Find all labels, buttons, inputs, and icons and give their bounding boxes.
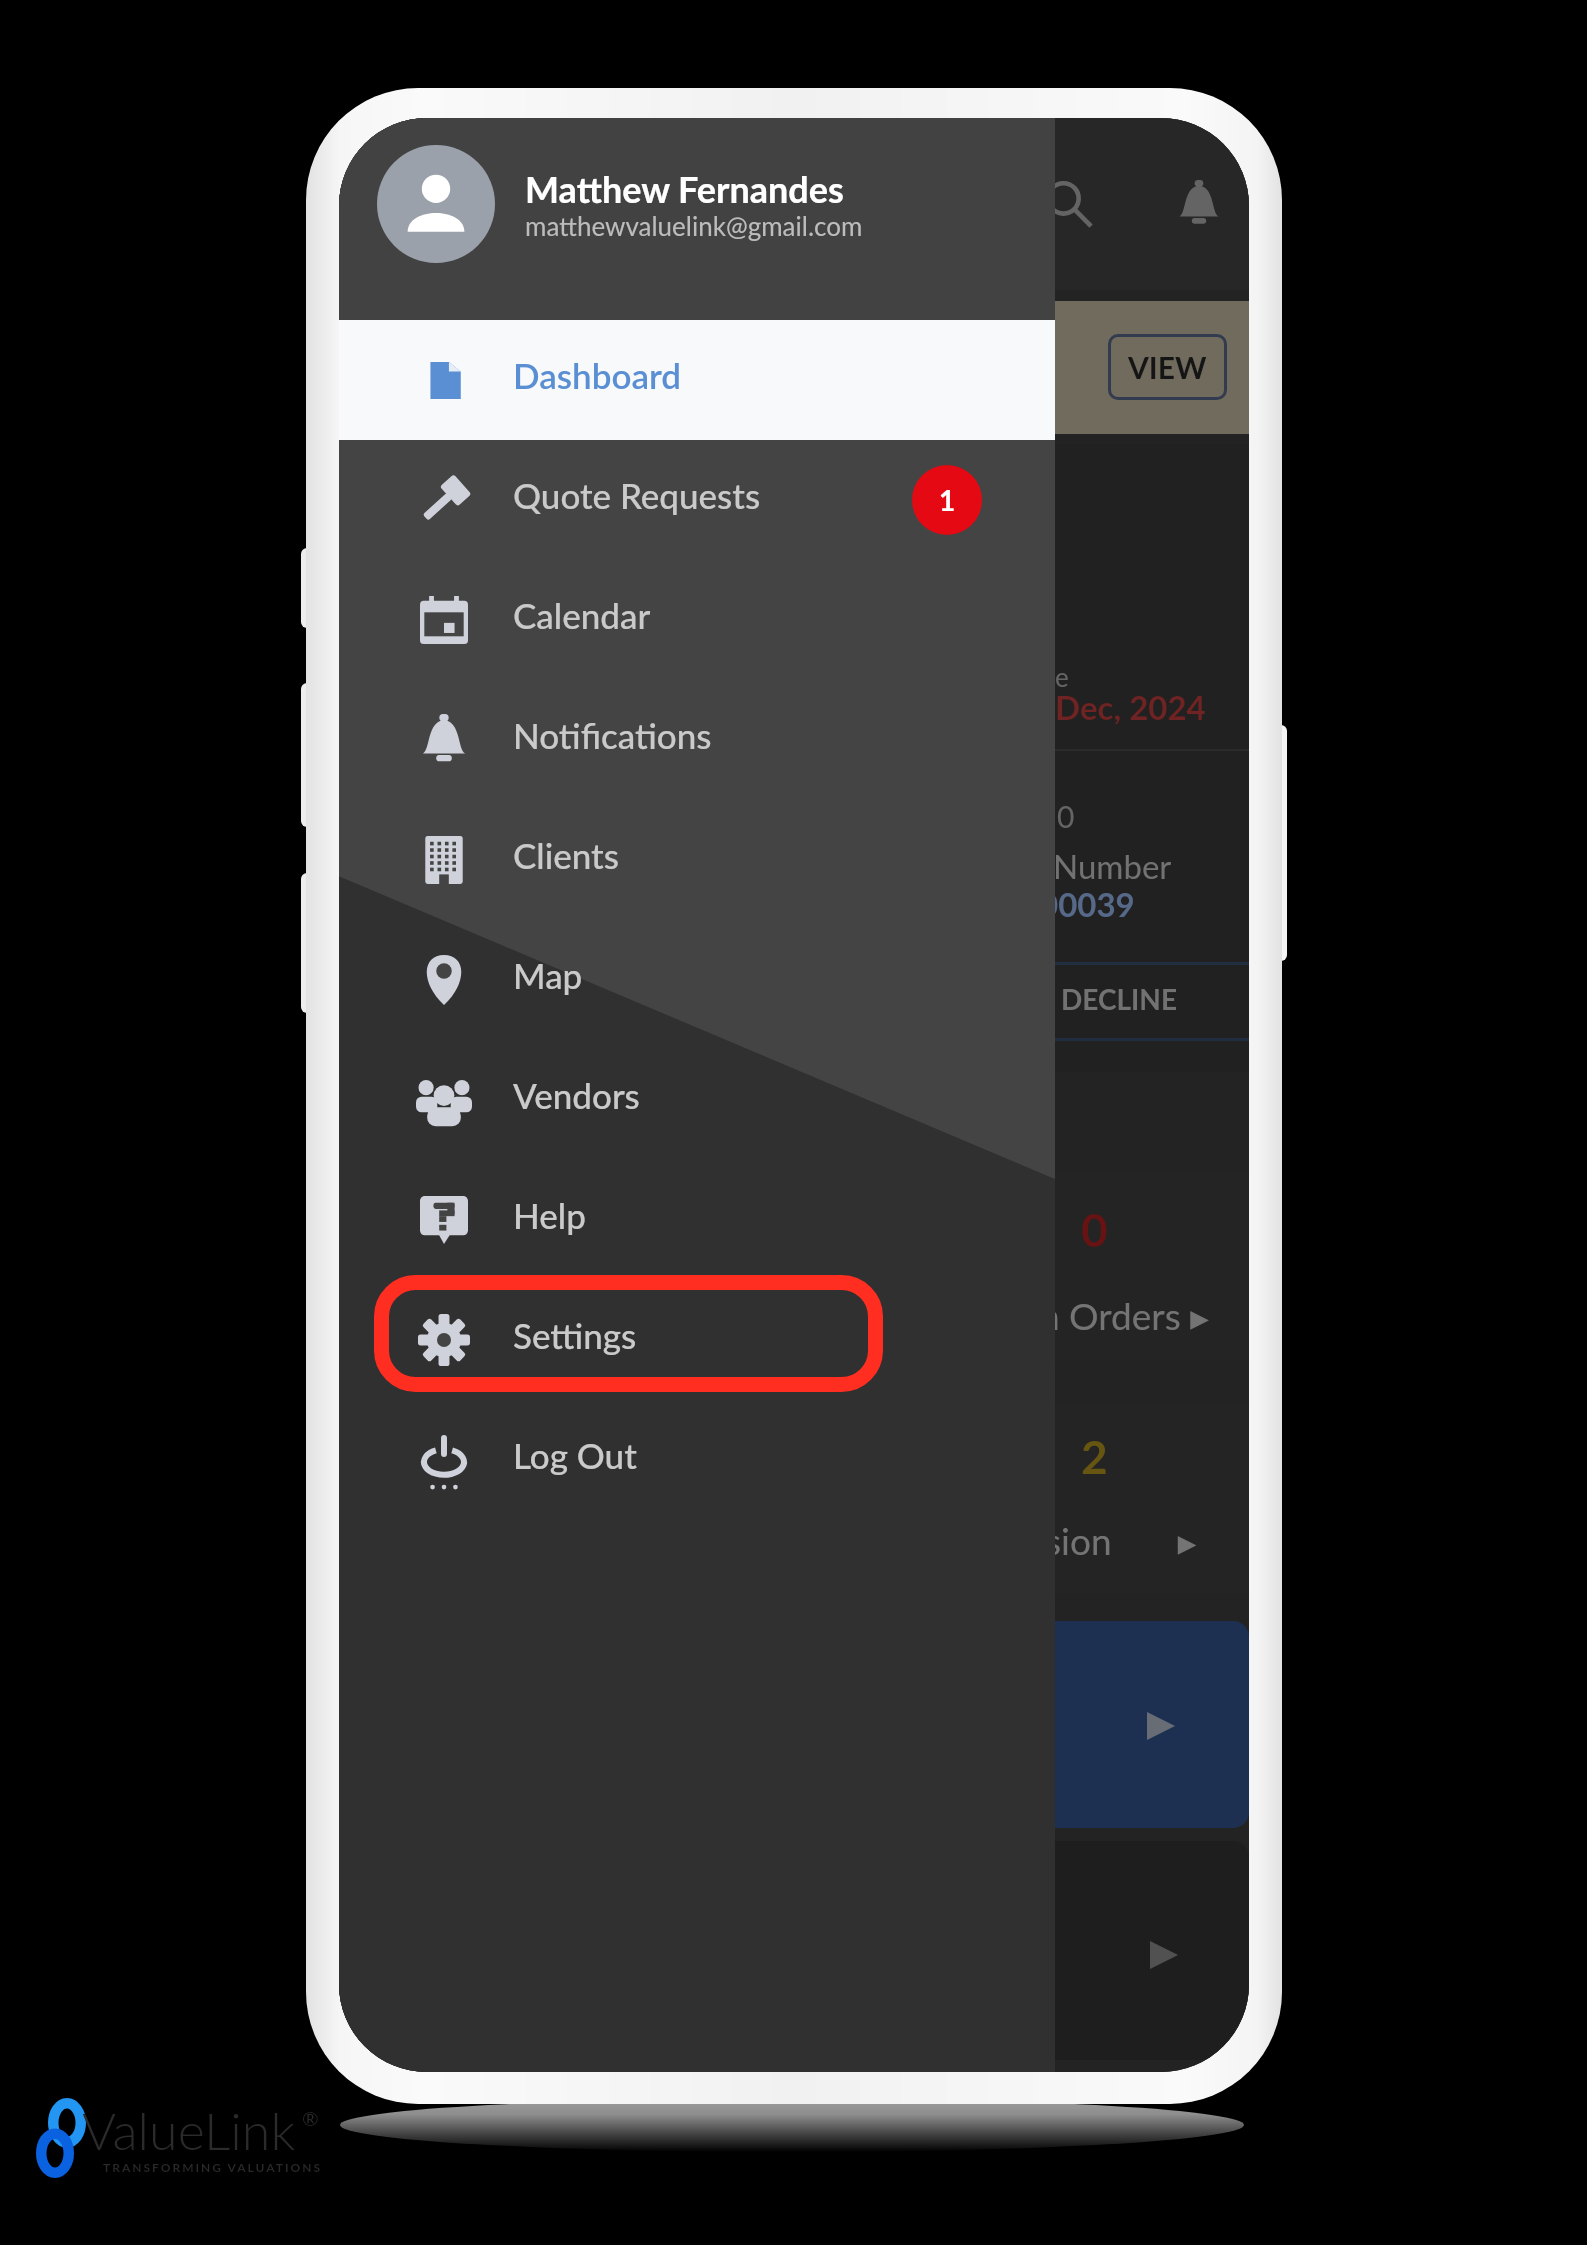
- button[interactable]: Help: [339, 1160, 1055, 1280]
- staticText: Help: [513, 1194, 586, 1236]
- button[interactable]: 2: [339, 1405, 1249, 1594]
- staticText: Dec, 2024: [1055, 687, 1206, 727]
- button[interactable]: Calendar: [339, 560, 1055, 680]
- staticText: 00039: [1039, 884, 1135, 924]
- staticText: ®: [302, 2106, 319, 2130]
- button[interactable]: Matthew Fernandes: [339, 118, 1055, 320]
- staticText: 0: [1057, 798, 1075, 834]
- button[interactable]: Notifications: [339, 680, 1055, 800]
- staticText: Dashboard: [513, 354, 682, 396]
- button[interactable]: Vendors: [339, 1040, 1055, 1160]
- button[interactable]: Dashboard: [339, 320, 1055, 440]
- button[interactable]: Search: [1025, 160, 1113, 248]
- staticText: Log Out: [513, 1434, 637, 1476]
- staticText: Vendors: [513, 1074, 640, 1116]
- button[interactable]: Open details: [339, 1841, 1249, 2060]
- staticText: Matthew Fernandes: [525, 167, 844, 210]
- button[interactable]: Log Out: [339, 1400, 1055, 1520]
- button[interactable]: VIEW: [1108, 334, 1227, 400]
- staticText: Number: [1053, 846, 1172, 886]
- staticText: 1: [939, 483, 956, 517]
- staticText: TRANSFORMING VALUATIONS: [103, 2160, 322, 2174]
- staticText: Map: [513, 954, 583, 996]
- button[interactable]: Settings: [339, 1280, 1055, 1400]
- staticText: 0: [1081, 1202, 1108, 1257]
- button[interactable]: Map: [339, 920, 1055, 1040]
- staticText: DECLINE: [1061, 982, 1178, 1016]
- staticText: Settings: [513, 1314, 637, 1356]
- staticText: Calendar: [513, 594, 651, 636]
- staticText: 2: [1081, 1429, 1108, 1484]
- button[interactable]: Quote Requests: [339, 440, 1055, 560]
- button[interactable]: 0: [339, 1173, 1249, 1361]
- button[interactable]: Notifications: [1155, 160, 1243, 248]
- staticText: Notifications: [513, 714, 712, 756]
- staticText: n Orders ▸: [1039, 1293, 1209, 1338]
- staticText: VIEW: [1128, 349, 1207, 385]
- staticText: Clients: [513, 834, 619, 876]
- button[interactable]: Clients: [339, 800, 1055, 920]
- staticText: e: [1055, 661, 1069, 692]
- staticText: sion ▸: [1045, 1518, 1197, 1563]
- button[interactable]: Open details: [339, 1621, 1249, 1828]
- staticText: matthewvaluelink@gmail.com: [525, 210, 863, 241]
- staticText: ValueLink: [82, 2099, 296, 2161]
- staticText: Quote Requests: [513, 474, 761, 516]
